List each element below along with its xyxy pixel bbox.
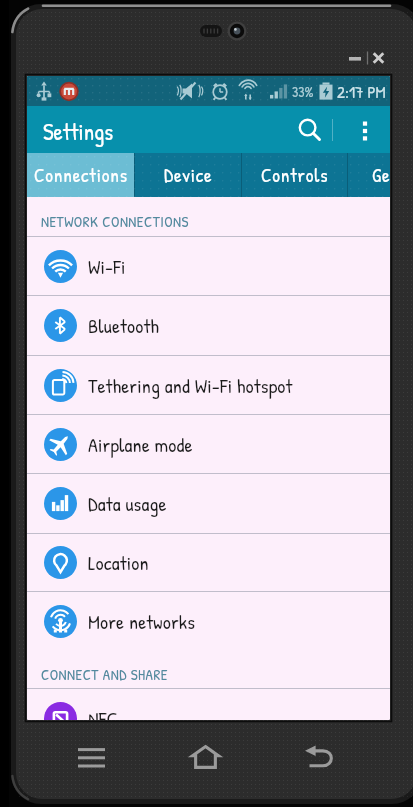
staticText: Device [164, 162, 213, 188]
staticText: NETWORK CONNECTIONS [41, 211, 189, 231]
button[interactable]: Data usage [27, 474, 390, 533]
staticText: Tethering and Wi-Fi hotspot [88, 372, 293, 399]
button[interactable]: Airplane mode [27, 415, 390, 473]
staticText: NFC [88, 705, 118, 720]
button[interactable]: General [348, 153, 390, 197]
button[interactable]: Back [262, 726, 376, 788]
staticText: General [372, 162, 390, 188]
button[interactable]: More networks [27, 592, 390, 650]
button[interactable]: Home [148, 726, 262, 788]
button[interactable]: More options [339, 106, 390, 153]
button[interactable]: Bluetooth [27, 296, 390, 355]
staticText: Data usage [88, 490, 167, 517]
staticText: Settings [43, 116, 114, 147]
button[interactable]: Tethering and Wi-Fi hotspot [27, 356, 390, 414]
staticText: Location [88, 549, 149, 576]
staticText: Controls [261, 162, 329, 188]
button[interactable]: Wi-Fi [27, 237, 390, 295]
button[interactable]: Controls [242, 153, 347, 197]
staticText: CONNECT AND SHARE [41, 664, 168, 684]
staticText: 2:17 PM [337, 80, 386, 103]
button[interactable]: Device [135, 153, 241, 197]
button[interactable]: Search [286, 106, 333, 153]
staticText: Connections [34, 162, 128, 188]
button[interactable]: Recent apps [34, 726, 148, 788]
staticText: 33% [292, 82, 314, 101]
staticText: More networks [88, 608, 196, 635]
staticText: Bluetooth [88, 312, 160, 339]
button[interactable]: Connections [27, 153, 134, 197]
button[interactable]: Location [27, 534, 390, 591]
button[interactable]: NFC [27, 689, 390, 720]
staticText: Wi-Fi [88, 253, 126, 280]
staticText: Airplane mode [88, 431, 193, 458]
